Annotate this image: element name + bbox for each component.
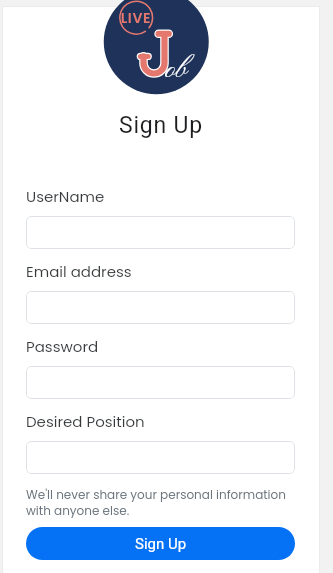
staticText: Sign Up xyxy=(135,535,187,553)
staticText: UserName xyxy=(26,186,105,207)
staticText: Email address xyxy=(26,261,132,282)
staticText: Sign Up xyxy=(2,112,320,139)
button[interactable] xyxy=(26,366,295,399)
staticText: Password xyxy=(26,336,99,357)
staticText: ob xyxy=(165,52,187,88)
button[interactable]: Sign Up xyxy=(26,527,295,560)
other: LiveJob logo xyxy=(104,6,208,95)
button[interactable] xyxy=(26,441,295,474)
staticText: Desired Position xyxy=(26,411,145,432)
button[interactable] xyxy=(26,291,295,324)
staticText: We'll never share your personal informat… xyxy=(26,486,295,519)
button[interactable] xyxy=(26,216,295,249)
staticText: LIVE xyxy=(116,8,156,28)
